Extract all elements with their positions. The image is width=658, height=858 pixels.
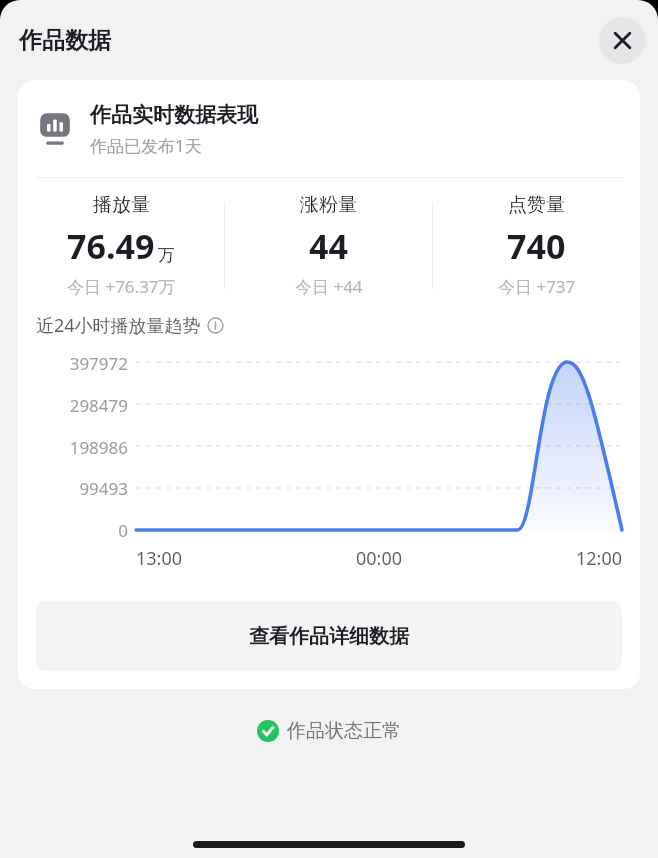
staticText: 13:00 [136, 546, 298, 571]
staticText: 今日 +76.37万 [67, 275, 176, 298]
staticText: 12:00 [460, 546, 622, 571]
staticText: 作品状态正常 [287, 719, 401, 743]
staticText: 44 [309, 223, 348, 269]
staticText: 涨粉量 [300, 193, 357, 217]
staticText: 198986 [69, 436, 128, 459]
staticText: 740 [507, 223, 566, 269]
staticText: 397972 [69, 352, 128, 375]
staticText: 今日 +737 [498, 275, 576, 298]
staticText: 万 [158, 245, 175, 266]
staticText: 点赞量 [508, 193, 565, 217]
staticText: 播放量 [93, 193, 150, 217]
staticText: 近24小时播放量趋势 [36, 313, 201, 338]
staticText: 作品数据 [19, 26, 111, 55]
staticText: 298479 [69, 394, 128, 417]
staticText: 查看作品详细数据 [249, 624, 409, 649]
staticText: 0 [118, 519, 128, 542]
staticText: 作品已发布1天 [90, 134, 202, 157]
button[interactable]: 查看作品详细数据 [36, 601, 622, 671]
staticText: 76.49 [67, 223, 155, 269]
staticText: 今日 +44 [295, 275, 363, 298]
button[interactable]: Close [599, 17, 646, 64]
staticText: 作品实时数据表现 [90, 102, 258, 128]
staticText: 00:00 [298, 546, 460, 571]
staticText: 99493 [79, 477, 128, 500]
